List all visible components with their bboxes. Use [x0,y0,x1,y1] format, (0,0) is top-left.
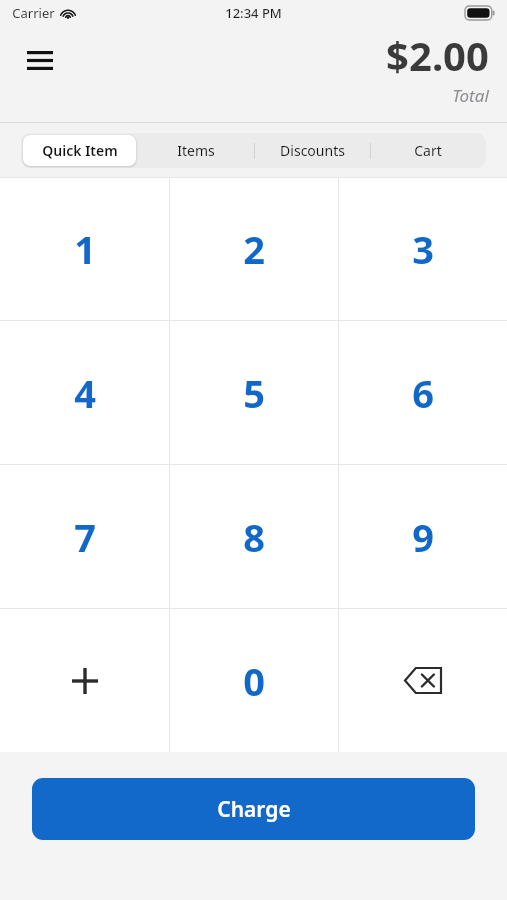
staticText: Carrier [12,4,55,22]
staticText: Total [452,84,489,107]
button[interactable]: 6 [339,321,507,464]
staticText: Quick Item [42,141,118,160]
button[interactable]: 0 [170,609,338,752]
button[interactable]: 8 [170,465,338,608]
button[interactable]: 7 [0,465,169,608]
button[interactable]: Quick Item [21,133,138,168]
staticText: Charge [217,795,291,824]
button[interactable]: 5 [170,321,338,464]
staticText: Discounts [280,141,345,160]
staticText: 9 [412,511,434,563]
staticText: 3 [412,223,434,275]
button[interactable]: 3 [339,178,507,320]
staticText: Items [177,141,215,160]
staticText: $2.00 [386,28,489,82]
button[interactable]: Add [0,609,169,752]
button[interactable]: Menu [16,36,64,84]
button[interactable]: Cart [370,133,486,168]
staticText: 6 [412,367,434,419]
staticText: 2 [243,223,265,275]
button[interactable]: Backspace [339,609,507,752]
button[interactable]: 9 [339,465,507,608]
staticText: Cart [414,141,442,160]
staticText: 4 [74,367,96,419]
button[interactable]: Items [138,133,254,168]
staticText: 1 [74,223,96,275]
button[interactable]: 1 [0,178,169,320]
staticText: 5 [243,367,265,419]
button[interactable]: 2 [170,178,338,320]
button[interactable]: 4 [0,321,169,464]
button[interactable]: Charge [32,778,475,840]
staticText: 8 [243,511,265,563]
staticText: 0 [243,655,265,707]
button[interactable]: Discounts [254,133,370,168]
staticText: 12:34 PM [225,4,282,22]
staticText: 7 [74,511,96,563]
